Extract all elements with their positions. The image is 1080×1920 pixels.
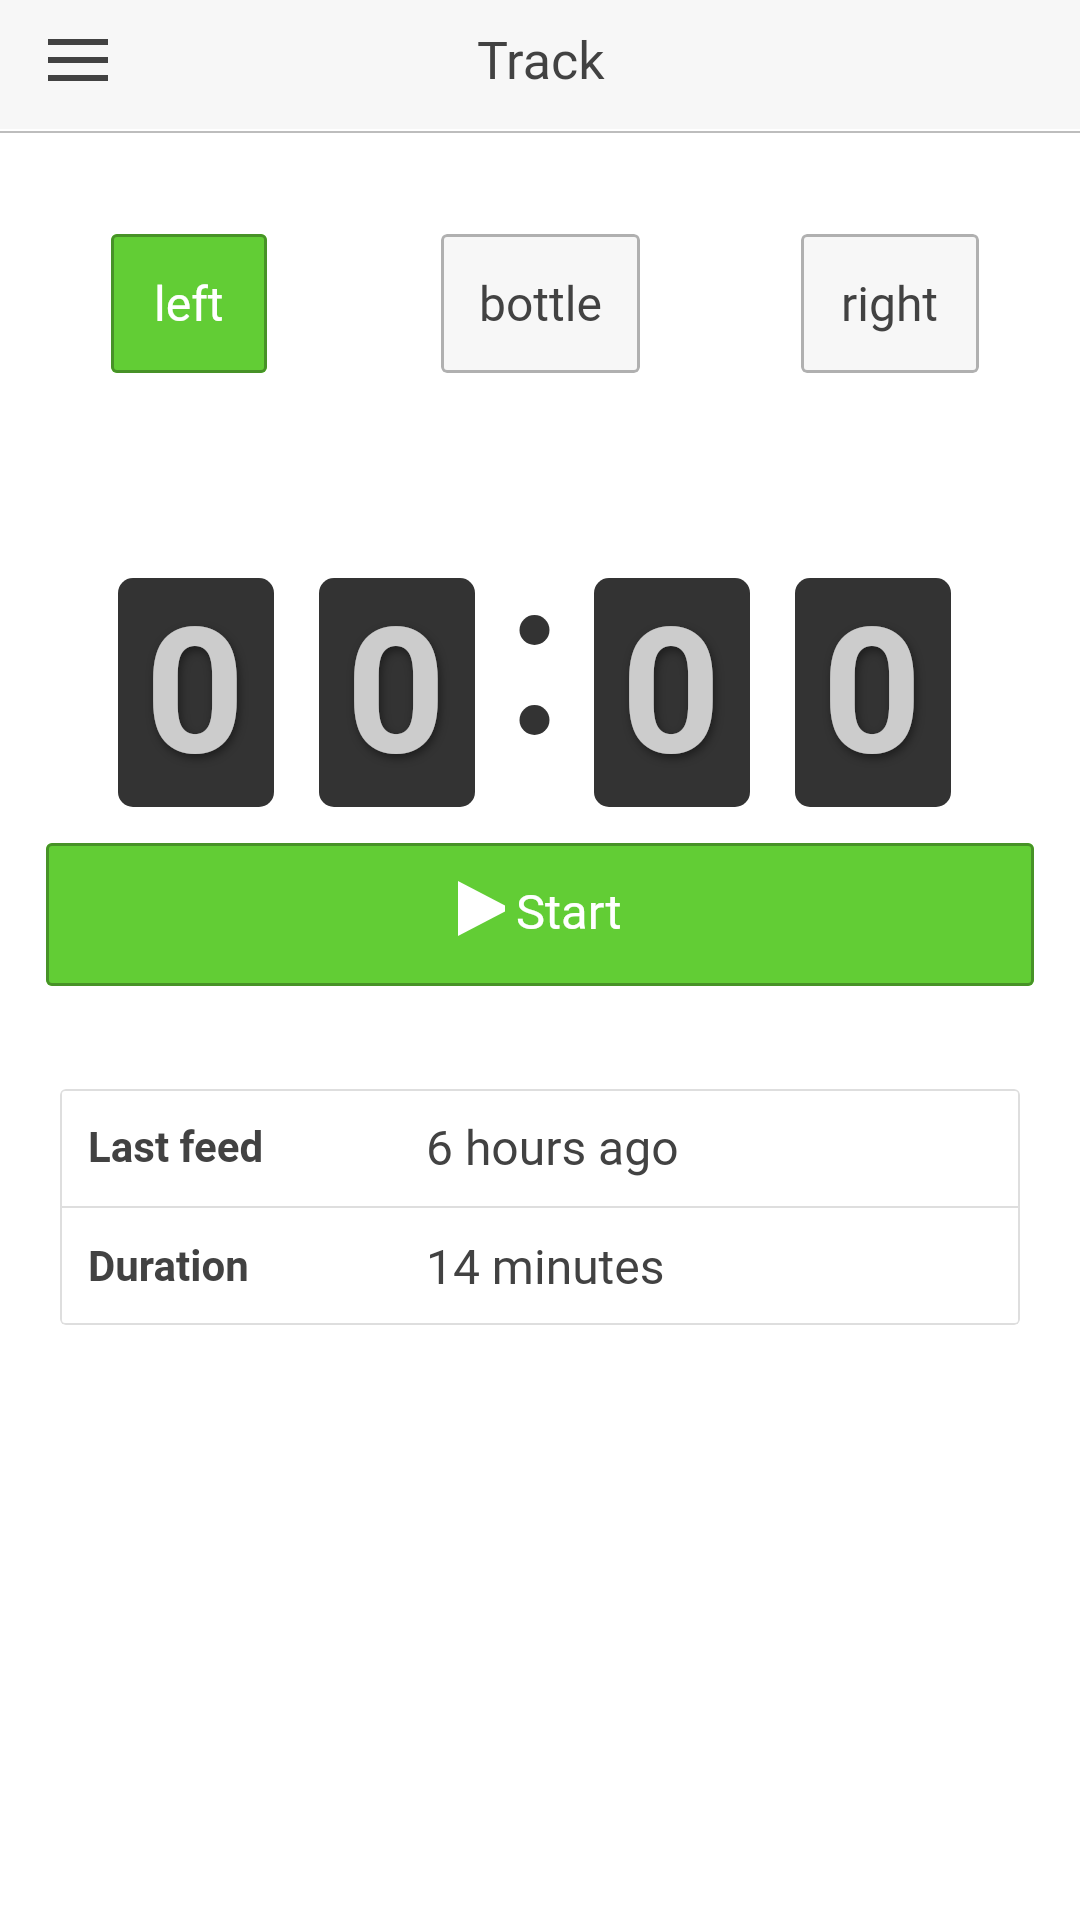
staticText: Track bbox=[477, 31, 605, 92]
staticText: left bbox=[154, 276, 224, 332]
staticText: Last feed bbox=[88, 1123, 426, 1172]
staticText: 0 bbox=[822, 591, 922, 795]
staticText: bottle bbox=[479, 276, 602, 332]
staticText: 6 hours ago bbox=[426, 1120, 679, 1176]
staticText: 0 bbox=[346, 591, 446, 795]
staticText: 14 minutes bbox=[426, 1239, 665, 1295]
staticText: Duration bbox=[88, 1242, 426, 1291]
staticText: 0 bbox=[621, 591, 721, 795]
staticText: 0 bbox=[145, 591, 245, 795]
button[interactable]: Open navigation menu bbox=[18, 13, 138, 107]
button[interactable]: right bbox=[801, 234, 979, 373]
staticText: Start bbox=[516, 884, 622, 941]
button[interactable]: Start bbox=[46, 843, 1034, 986]
button[interactable]: left bbox=[111, 234, 267, 373]
staticText: right bbox=[841, 276, 939, 332]
button[interactable]: bottle bbox=[441, 234, 640, 373]
